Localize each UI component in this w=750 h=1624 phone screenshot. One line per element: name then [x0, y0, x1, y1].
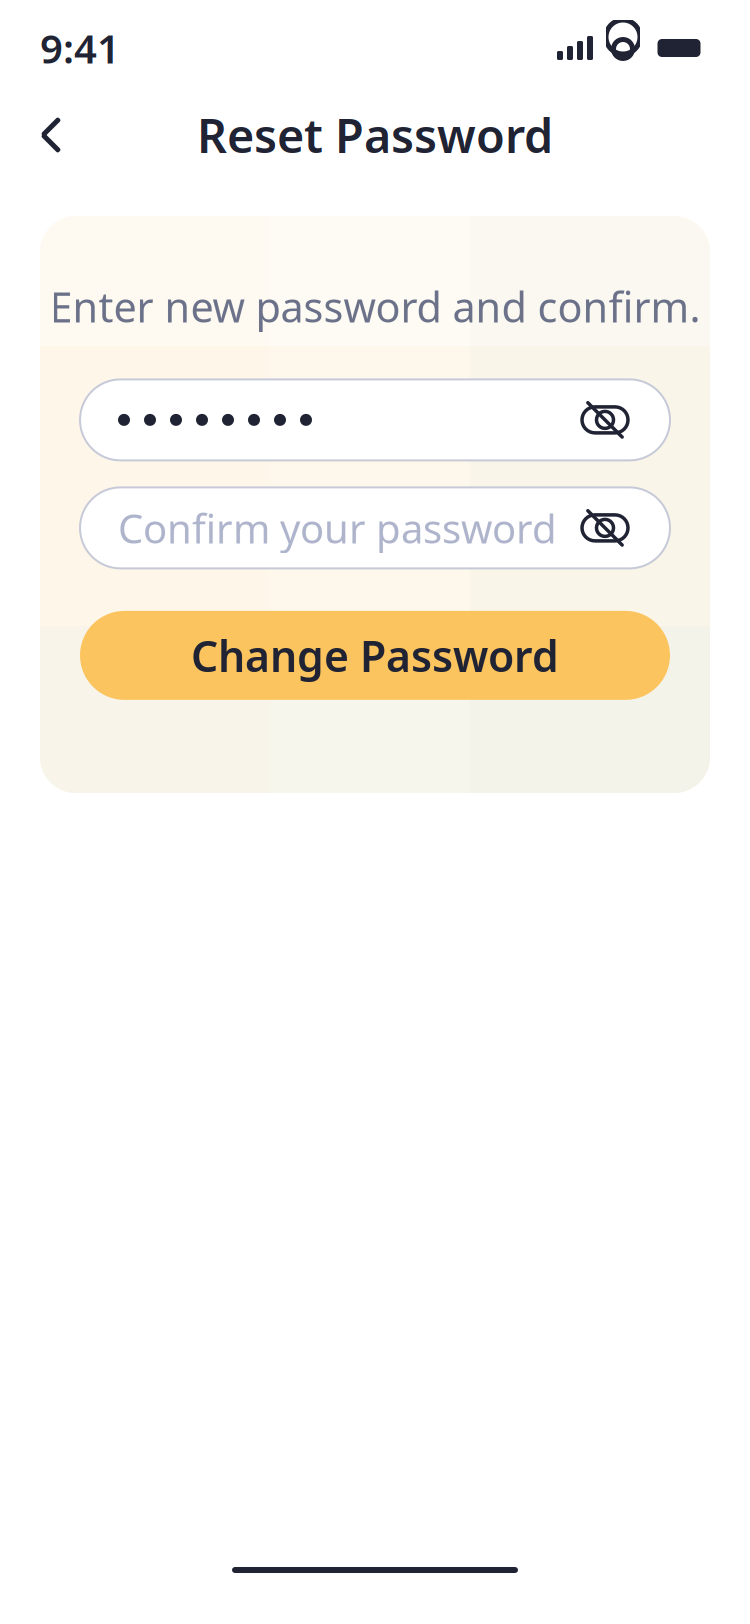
button[interactable]: Show password	[578, 501, 632, 555]
staticText: Reset Password	[197, 104, 553, 166]
button[interactable]: Change Password	[80, 611, 670, 700]
staticText: 9:41	[40, 21, 120, 74]
staticText: Enter new password and confirm.	[49, 279, 700, 334]
staticText: Confirm your password	[118, 501, 557, 554]
button[interactable]: Back	[20, 104, 82, 166]
button[interactable]: Show password	[578, 393, 632, 447]
staticText: Change Password	[191, 627, 559, 684]
